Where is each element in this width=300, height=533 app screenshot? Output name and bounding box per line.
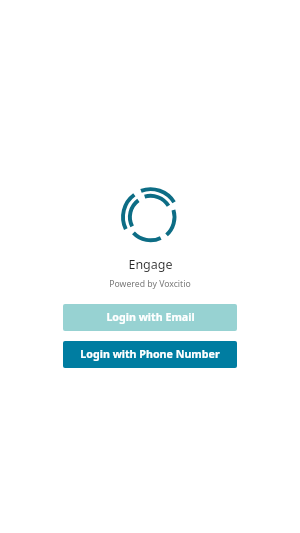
staticText: Login with Phone Number	[80, 347, 220, 362]
staticText: Engage	[128, 256, 173, 273]
staticText: Powered by Voxcitio	[109, 278, 191, 290]
staticText: Login with Email	[106, 310, 195, 325]
other: Engage logo	[120, 186, 180, 246]
button[interactable]: Login with Phone Number	[63, 341, 237, 368]
button[interactable]: Login with Email	[63, 304, 237, 331]
